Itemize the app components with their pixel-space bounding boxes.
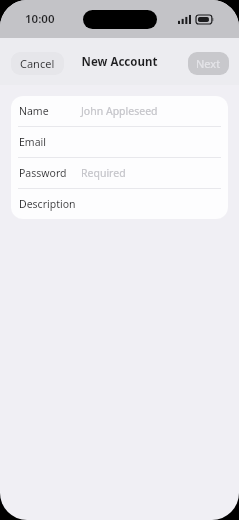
staticText: Cancel <box>20 56 55 71</box>
staticText: Next <box>196 56 221 71</box>
button[interactable]: Password <box>11 158 228 188</box>
button[interactable]: Next <box>188 52 229 75</box>
staticText: Required <box>81 166 126 180</box>
staticText: Email <box>19 135 46 149</box>
staticText: Password <box>19 166 67 180</box>
button[interactable]: Cancel <box>11 52 64 75</box>
staticText: 10:00 <box>25 11 55 27</box>
button[interactable]: Name <box>11 96 228 126</box>
button[interactable]: Email <box>11 127 228 157</box>
staticText: John Appleseed <box>81 104 158 118</box>
staticText: New Account <box>0 54 239 70</box>
button[interactable]: Description <box>11 189 228 219</box>
staticText: Description <box>19 197 76 211</box>
staticText: Name <box>19 104 49 118</box>
